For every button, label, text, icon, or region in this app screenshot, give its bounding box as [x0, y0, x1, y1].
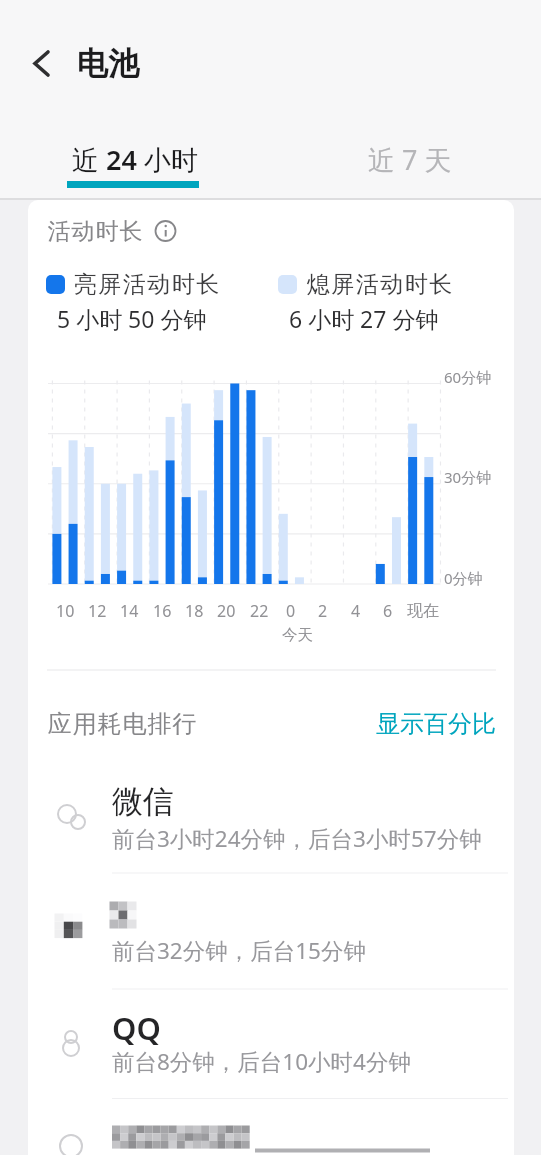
staticText: 近 7 天	[368, 141, 452, 178]
staticText: QQ	[112, 1007, 161, 1049]
button[interactable]	[0, 989, 541, 1099]
button[interactable]: 显示百分比	[0, 0, 250, 50]
staticText: 4	[351, 600, 361, 622]
staticText: 10	[56, 600, 75, 622]
staticText: 12	[88, 600, 107, 622]
staticText: 5 小时 50 分钟	[57, 303, 207, 334]
staticText: 亮屏活动时长	[73, 270, 220, 299]
staticText: 16	[153, 600, 172, 622]
staticText: 14	[120, 600, 139, 622]
staticText: 前台32分钟，后台15分钟	[112, 935, 366, 966]
staticText: 0分钟	[444, 568, 483, 588]
button[interactable]: 近 7 天	[278, 126, 541, 192]
staticText: 近 24 小时	[72, 141, 198, 178]
staticText: 前台3小时24分钟，后台3小时57分钟	[112, 823, 482, 854]
staticText: 2	[318, 600, 328, 622]
staticText: 熄屏活动时长	[306, 270, 453, 299]
staticText: 22	[250, 600, 269, 622]
staticText: 应用耗电排行	[47, 709, 197, 739]
button[interactable]	[0, 1099, 541, 1155]
staticText: 前台8分钟，后台10小时4分钟	[112, 1046, 411, 1077]
staticText: 微信	[112, 782, 174, 821]
staticText: 电池	[77, 44, 139, 83]
staticText: 活动时长	[47, 217, 143, 246]
staticText: 30分钟	[444, 467, 492, 487]
staticText: 18	[185, 600, 204, 622]
button[interactable]	[0, 752, 541, 873]
staticText: 0	[286, 600, 296, 622]
staticText: 显示百分比	[376, 709, 496, 739]
button[interactable]	[0, 873, 541, 989]
staticText: 今天	[282, 625, 313, 645]
staticText: 6	[383, 600, 393, 622]
staticText: 6 小时 27 分钟	[289, 303, 439, 334]
button[interactable]: 近 24 小时	[0, 126, 270, 192]
staticText: 20	[217, 600, 236, 622]
staticText: 60分钟	[444, 367, 492, 387]
staticText: 现在	[407, 601, 439, 621]
button[interactable]	[22, 40, 68, 86]
